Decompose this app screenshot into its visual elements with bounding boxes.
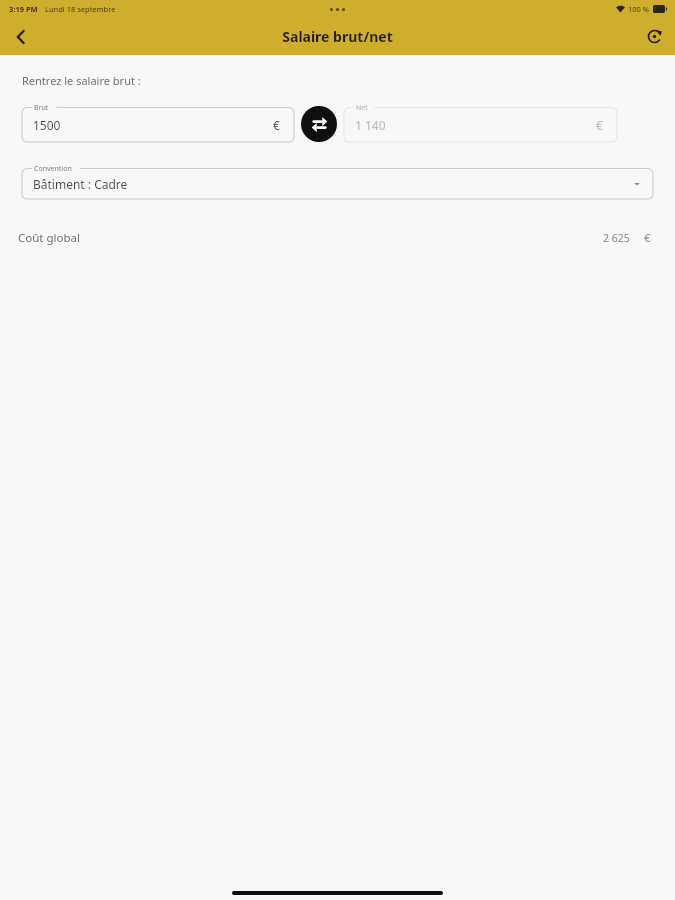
staticText: € (596, 117, 603, 133)
staticText: Net (356, 103, 368, 113)
staticText: € (273, 117, 280, 133)
button[interactable]: Back (0, 18, 42, 55)
button[interactable]: Brut (22, 107, 294, 142)
staticText: Salaire brut/net (282, 27, 393, 46)
staticText: 1 140 (355, 117, 386, 133)
button[interactable]: Net (344, 107, 617, 142)
button[interactable]: Swap brut and net (301, 106, 337, 142)
staticText: 100 % (628, 4, 650, 14)
staticText: Lundi 18 septembre (45, 4, 116, 14)
staticText: Convention (34, 164, 72, 174)
button[interactable]: History (633, 18, 675, 55)
staticText: € (644, 230, 651, 246)
staticText: Brut (34, 103, 49, 113)
staticText: 3:19 PM (9, 4, 38, 14)
staticText: Coût global (18, 230, 80, 246)
button[interactable]: Convention (22, 168, 653, 199)
staticText: 2 625 (603, 231, 630, 245)
staticText: 1500 (33, 117, 61, 133)
staticText: Bâtiment : Cadre (33, 176, 128, 192)
staticText: Rentrez le salaire brut : (22, 73, 141, 88)
